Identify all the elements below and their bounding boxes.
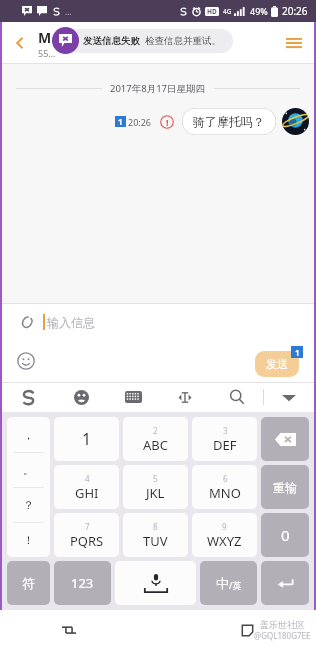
staticText: MNO xyxy=(209,484,241,502)
button[interactable]: 发送 xyxy=(255,351,299,377)
staticText: 2017年8月17日星期四 xyxy=(110,82,206,95)
button[interactable]: Enter xyxy=(261,561,309,605)
staticText: @GQL180G7EE xyxy=(254,630,311,641)
button[interactable]: Menu xyxy=(274,23,314,63)
button[interactable]: Keyboard layout xyxy=(107,382,159,412)
staticText: GHI xyxy=(75,484,99,502)
button[interactable]: 8 xyxy=(123,513,188,557)
staticText: 1 xyxy=(118,116,123,127)
staticText: 1 xyxy=(82,428,92,450)
staticText: M… xyxy=(38,28,64,47)
button[interactable]: 7 xyxy=(54,513,119,557)
button[interactable]: Move cursor xyxy=(159,382,211,412)
button[interactable]: Emoji xyxy=(13,348,39,374)
staticText: PQRS xyxy=(70,532,104,550)
staticText: 发送 xyxy=(266,357,288,371)
staticText: WXYZ xyxy=(207,532,242,550)
staticText: 9 xyxy=(222,521,227,532)
button[interactable]: Hide keyboard xyxy=(264,382,314,412)
staticText: 符 xyxy=(22,575,35,591)
staticText: 3 xyxy=(223,425,228,436)
button[interactable]: 符号 xyxy=(7,561,50,605)
staticText: 1 xyxy=(295,347,300,358)
staticText: 5 xyxy=(153,473,158,484)
button[interactable]: 9 xyxy=(192,513,257,557)
button[interactable]: 中英切换 xyxy=(200,561,257,605)
staticText: 20:26 xyxy=(128,116,152,128)
button[interactable]: 5 xyxy=(123,465,188,509)
staticText: ! xyxy=(166,116,169,128)
button[interactable]: Contact avatar xyxy=(282,108,309,135)
button[interactable]: 123 xyxy=(54,561,111,605)
button[interactable]: Stickers xyxy=(55,382,107,412)
button[interactable]: Backspace xyxy=(261,417,309,461)
button[interactable]: Back xyxy=(227,610,267,650)
staticText: 。 xyxy=(23,463,34,477)
button[interactable]: 1 xyxy=(54,417,119,461)
staticText: ... xyxy=(65,6,72,17)
staticText: 6 xyxy=(223,473,228,484)
button[interactable]: 发送信息失败 xyxy=(65,29,233,53)
staticText: 检查信息并重试。 xyxy=(145,35,221,47)
staticText: 7 xyxy=(85,521,90,532)
staticText: ABC xyxy=(143,436,168,454)
staticText: 123 xyxy=(71,574,94,592)
staticText: 4 xyxy=(85,473,90,484)
staticText: 8 xyxy=(153,521,158,532)
staticText: 2 xyxy=(153,425,158,436)
button[interactable]: 4 xyxy=(54,465,119,509)
staticText: 中 xyxy=(216,575,229,591)
button[interactable]: Punctuation xyxy=(7,417,50,557)
staticText: 骑了摩托吗？ xyxy=(193,114,265,129)
staticText: ， xyxy=(23,428,34,442)
staticText: TUV xyxy=(143,532,168,550)
staticText: 输入信息 xyxy=(47,315,95,330)
button[interactable]: Search xyxy=(211,382,263,412)
button[interactable]: Send failed xyxy=(52,27,79,54)
staticText: 55… xyxy=(38,47,56,59)
staticText: 盖乐世社区 xyxy=(260,619,305,630)
button[interactable]: 6 xyxy=(192,465,257,509)
staticText: DEF xyxy=(213,436,237,454)
button[interactable]: 3 xyxy=(192,417,257,461)
staticText: /英 xyxy=(229,579,242,591)
staticText: 49% xyxy=(250,5,268,17)
button[interactable]: Attach file xyxy=(13,309,39,335)
button[interactable]: Sogou input method xyxy=(2,382,55,412)
staticText: 20:26 xyxy=(282,4,308,18)
staticText: HD xyxy=(207,7,217,16)
button[interactable]: Space and voice input xyxy=(115,561,196,605)
button[interactable]: 0 xyxy=(261,513,309,557)
button[interactable]: 2 xyxy=(123,417,188,461)
staticText: ？ xyxy=(23,498,34,512)
button[interactable]: Recent apps xyxy=(49,610,89,650)
staticText: JKL xyxy=(146,484,165,502)
staticText: ！ xyxy=(23,533,34,547)
staticText: 重输 xyxy=(273,480,297,495)
staticText: 4G xyxy=(223,7,232,16)
button[interactable]: 重输 xyxy=(261,465,309,509)
button[interactable]: 骑了摩托吗？ xyxy=(182,108,276,135)
staticText: 0 xyxy=(281,525,290,545)
button[interactable]: Back xyxy=(2,25,38,61)
staticText: 发送信息失败 xyxy=(83,35,140,47)
